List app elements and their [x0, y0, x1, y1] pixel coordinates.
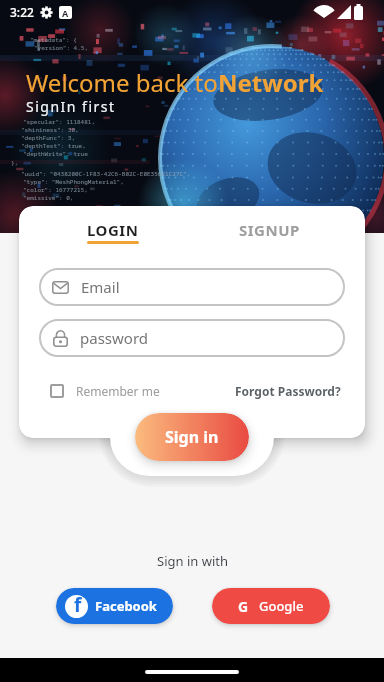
staticText: G	[238, 597, 249, 616]
button[interactable]: G	[212, 588, 330, 624]
staticText: 3:22	[10, 4, 34, 20]
button[interactable]: Sign in	[135, 413, 249, 461]
staticText: "version": 4.5,	[34, 44, 89, 52]
staticText: password	[80, 328, 148, 348]
staticText: f	[74, 592, 82, 615]
staticText: "emissive": 0,	[23, 194, 74, 202]
staticText: },	[11, 159, 19, 167]
staticText: SIGNUP	[239, 220, 300, 240]
button[interactable]: Email	[39, 268, 345, 306]
staticText: "depthTest": true,	[21, 142, 86, 150]
staticText: Remember me	[76, 383, 160, 399]
button[interactable]: LOGIN	[63, 220, 163, 240]
staticText: Sign in	[165, 426, 219, 448]
staticText: SignIn first	[26, 97, 116, 116]
staticText: "specular": 1118481,	[23, 118, 96, 126]
staticText: Welcome back to	[26, 66, 218, 99]
staticText: Forgot Password?	[235, 383, 341, 399]
staticText: Facebook	[95, 597, 157, 615]
staticText: Google	[259, 597, 304, 615]
button[interactable]: password	[39, 319, 345, 357]
button[interactable]: Forgot Password?	[200, 382, 341, 400]
staticText: "shininess": 30,	[21, 126, 79, 134]
staticText: "depthFunc": 3,	[21, 134, 76, 142]
staticText: "metadata": {	[30, 36, 77, 44]
button[interactable]: SIGNUP	[219, 220, 319, 240]
staticText: Sign in with	[157, 552, 228, 570]
staticText: Network	[218, 66, 324, 99]
staticText: "uuid": "0438200C-1F83-42C6-B02C-E0E3562…	[21, 170, 191, 178]
staticText: Email	[81, 277, 120, 297]
button[interactable]: f	[56, 588, 173, 624]
staticText: "type": "MeshPhongMaterial",	[23, 178, 124, 186]
staticText: "color": 16777215,	[23, 186, 88, 194]
staticText: A	[62, 7, 69, 19]
staticText: "depthWrite": true	[23, 150, 88, 158]
button[interactable]: Remember me	[50, 382, 210, 400]
staticText: LOGIN	[87, 220, 139, 240]
